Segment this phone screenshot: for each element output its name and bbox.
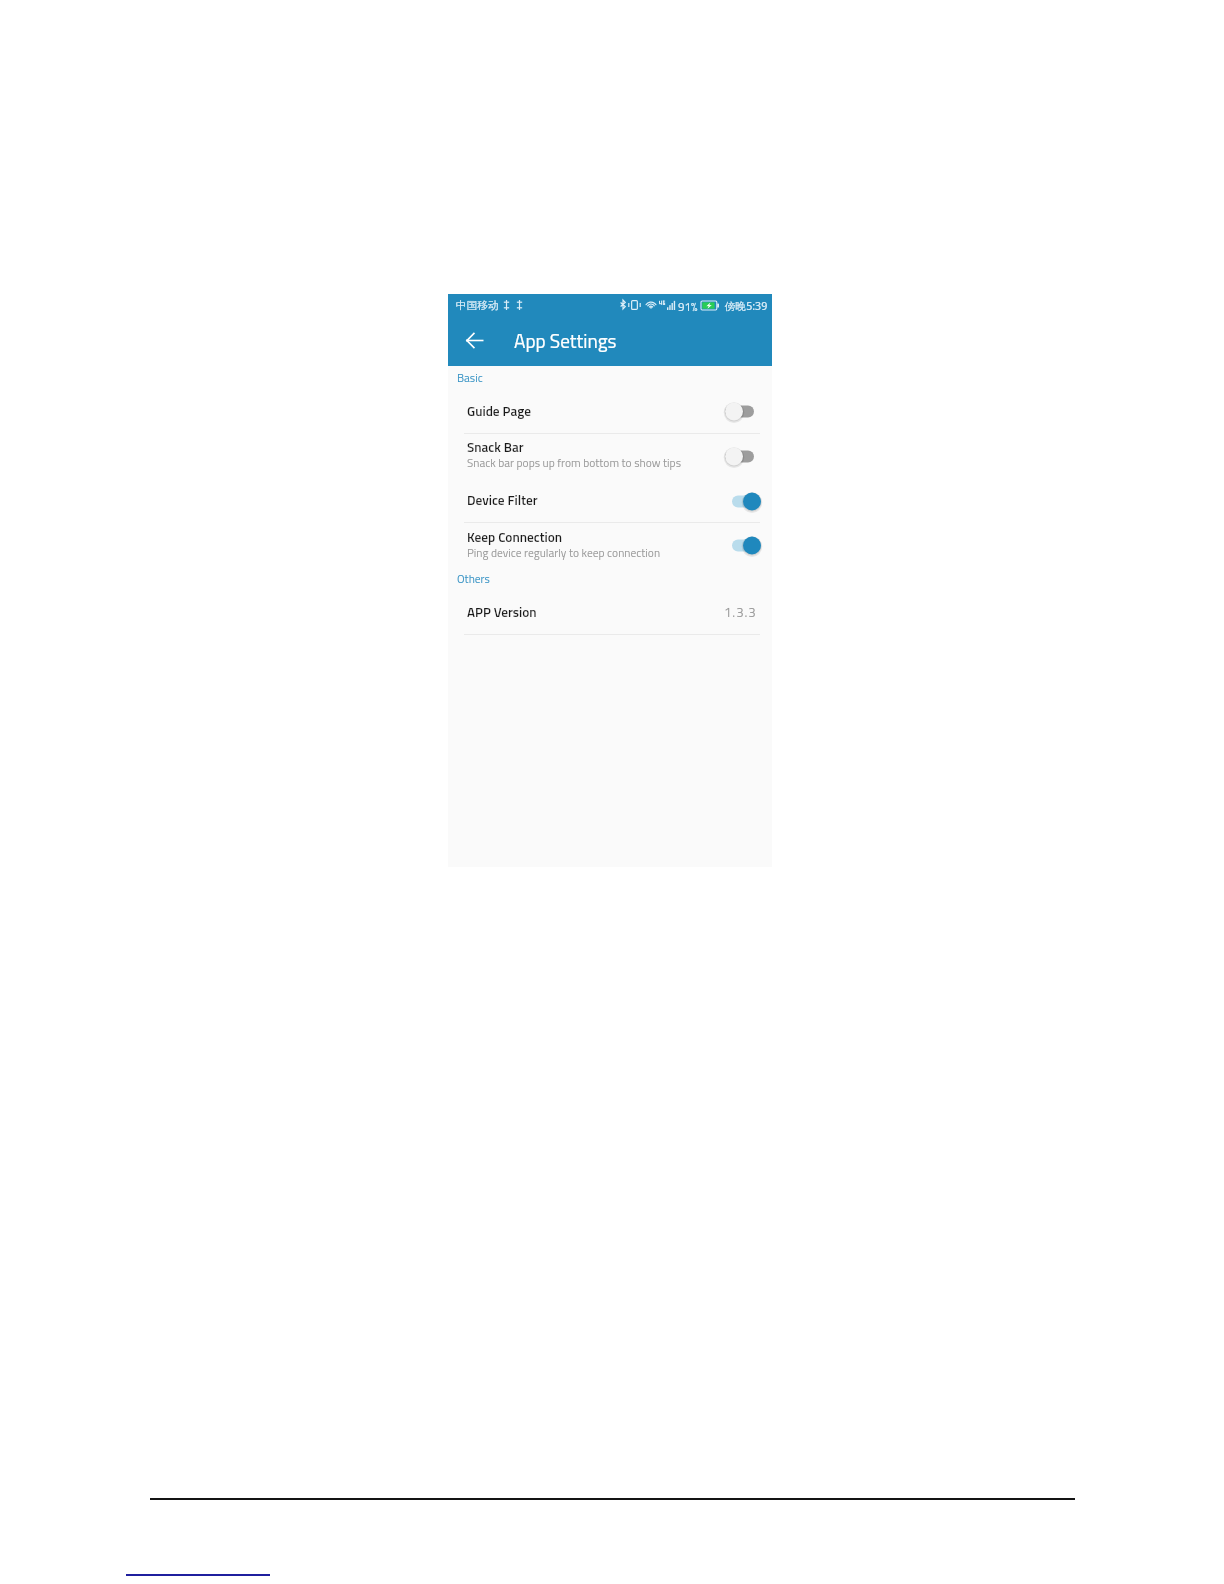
button[interactable] — [448, 522, 772, 568]
button[interactable]: Switch off — [725, 446, 761, 467]
staticText: 傍晚5:39 — [725, 299, 768, 313]
staticText: Basic — [457, 369, 483, 386]
staticText: Keep Connection — [467, 527, 563, 547]
staticText: Others — [457, 570, 490, 587]
button[interactable] — [448, 433, 772, 479]
button[interactable]: Back — [466, 333, 483, 348]
staticText: 91% — [678, 298, 698, 315]
staticText: Guide Page — [467, 401, 531, 421]
button[interactable]: Switch off — [725, 401, 761, 422]
staticText: Snack bar pops up from bottom to show ti… — [467, 454, 681, 471]
button[interactable] — [448, 479, 772, 522]
staticText: App Settings — [514, 326, 617, 355]
button[interactable]: Switch on — [725, 491, 761, 512]
staticText: 中国移动 — [456, 299, 499, 312]
button[interactable]: Switch on — [725, 535, 761, 556]
button[interactable] — [448, 389, 772, 433]
staticText: Device Filter — [467, 490, 538, 510]
staticText: 1.3.3 — [724, 602, 757, 622]
staticText: Ping device regularly to keep connection — [467, 544, 661, 561]
staticText: Snack Bar — [467, 437, 524, 457]
staticText: APP Version — [467, 602, 537, 622]
button[interactable] — [448, 594, 772, 634]
